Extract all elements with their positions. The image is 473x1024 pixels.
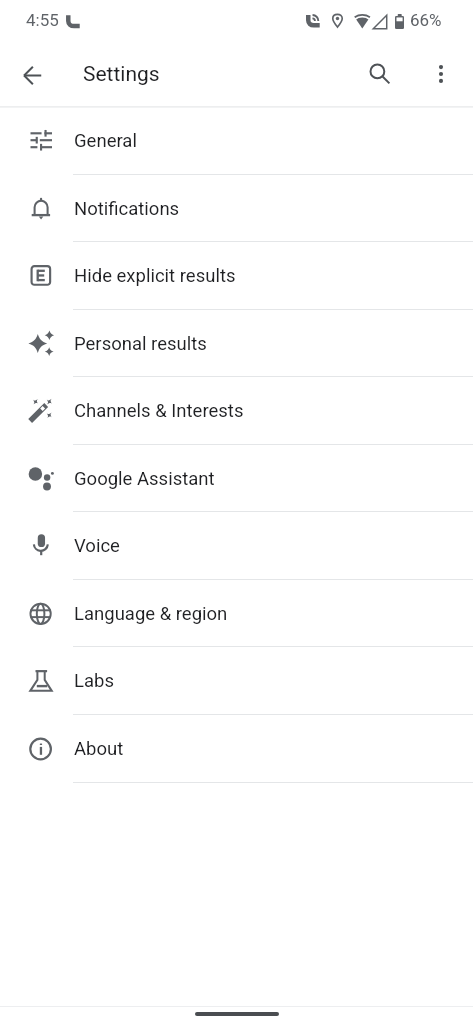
button[interactable]: Google Assistant xyxy=(0,445,473,513)
staticText: Google Assistant xyxy=(74,468,215,490)
button[interactable]: Labs xyxy=(0,647,473,715)
button[interactable]: Channels & Interests xyxy=(0,377,473,445)
button[interactable]: General xyxy=(0,107,473,175)
staticText: Settings xyxy=(83,62,160,87)
staticText: Channels & Interests xyxy=(74,400,244,422)
staticText: General xyxy=(74,130,137,152)
button[interactable]: Notifications xyxy=(0,175,473,243)
staticText: Notifications xyxy=(74,198,180,220)
button[interactable]: About xyxy=(0,715,473,783)
button[interactable]: More options xyxy=(417,50,465,98)
staticText: Voice xyxy=(74,535,120,557)
staticText: Personal results xyxy=(74,333,207,355)
staticText: 4:55 xyxy=(26,10,59,30)
button[interactable]: Search xyxy=(356,50,404,98)
staticText: About xyxy=(74,738,124,760)
button[interactable]: Personal results xyxy=(0,310,473,378)
staticText: 66% xyxy=(410,10,442,30)
staticText: Language & region xyxy=(74,603,228,625)
staticText: Hide explicit results xyxy=(74,265,236,287)
button[interactable]: Language & region xyxy=(0,580,473,648)
button[interactable]: Hide explicit results xyxy=(0,242,473,310)
button[interactable]: Voice xyxy=(0,512,473,580)
staticText: Labs xyxy=(74,670,114,692)
button[interactable]: Navigate up xyxy=(8,51,56,99)
